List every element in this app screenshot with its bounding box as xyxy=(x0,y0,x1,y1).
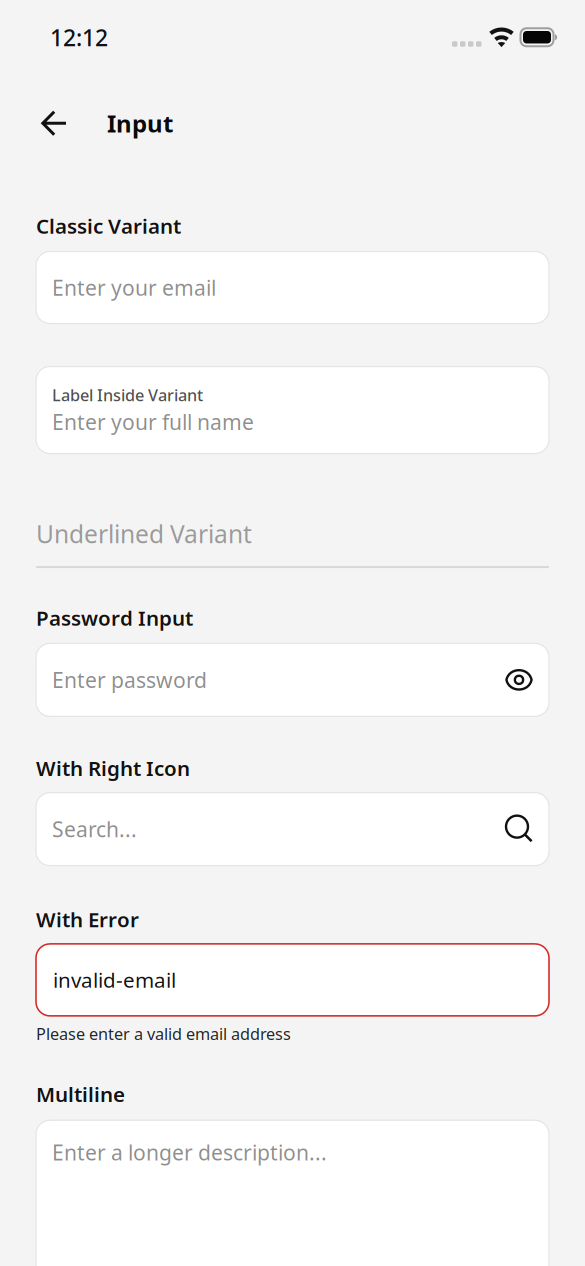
staticText: invalid-email xyxy=(53,966,176,994)
staticText: Enter your full name xyxy=(52,408,254,436)
staticText: Please enter a valid email address xyxy=(36,1023,291,1044)
staticText: Enter password xyxy=(52,666,207,694)
staticText: Classic Variant xyxy=(36,212,181,239)
button[interactable]: Back xyxy=(31,100,77,146)
staticText: Label Inside Variant xyxy=(52,384,203,406)
staticText: Multiline xyxy=(36,1080,125,1108)
button[interactable]: Search xyxy=(506,816,533,843)
staticText: Search... xyxy=(52,815,137,843)
staticText: Enter your email xyxy=(52,273,216,301)
staticText: 12:12 xyxy=(50,22,108,52)
staticText: Password Input xyxy=(36,604,193,631)
button[interactable]: Show password xyxy=(505,669,533,691)
staticText: Input xyxy=(107,107,173,139)
staticText: Underlined Variant xyxy=(36,517,252,550)
staticText: With Right Icon xyxy=(36,754,190,782)
staticText: Enter a longer description... xyxy=(52,1138,327,1166)
staticText: With Error xyxy=(36,906,139,933)
